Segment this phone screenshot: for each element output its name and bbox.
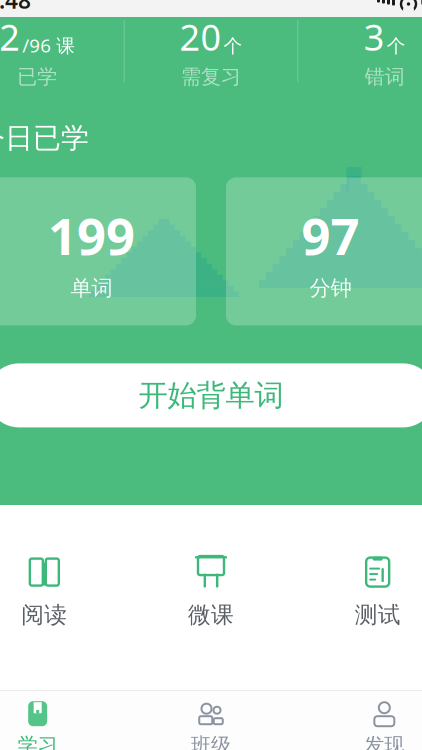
staticText: 12:48 [0,0,31,15]
button[interactable]: 发现 [298,691,422,750]
staticText: 微课 [188,601,234,629]
staticText: 今日已学 [0,121,89,155]
staticText: 阅读 [21,601,67,629]
staticText: 97 [301,202,359,269]
staticText: 班级 [191,733,231,750]
staticText: 199 [48,202,135,269]
staticText: 发现 [364,733,404,750]
staticText: 需复习 [181,65,241,89]
staticText: 个 [223,35,242,58]
staticText: 错词 [365,65,405,89]
button[interactable]: 学习 [0,691,124,750]
staticText: 学习 [18,733,58,750]
staticText: 2 [0,13,20,61]
staticText: 20 [179,13,221,61]
button[interactable]: 阅读 [0,549,128,635]
staticText: 单词 [70,275,112,301]
staticText: /96 课 [22,33,75,58]
button[interactable]: 20 [125,17,297,85]
button[interactable]: 班级 [124,691,298,750]
staticText: 测试 [355,601,401,629]
staticText: 3 [364,13,385,61]
staticText: 分钟 [309,275,351,301]
button[interactable]: 2 [0,17,124,85]
staticText: 开始背单词 [138,377,283,413]
button[interactable]: 测试 [294,549,422,635]
staticText: 已学 [17,65,57,89]
button[interactable]: 微课 [128,549,294,635]
button[interactable]: 开始背单词 [0,363,422,427]
staticText: 个 [387,35,406,58]
button[interactable]: 3 [298,17,422,85]
